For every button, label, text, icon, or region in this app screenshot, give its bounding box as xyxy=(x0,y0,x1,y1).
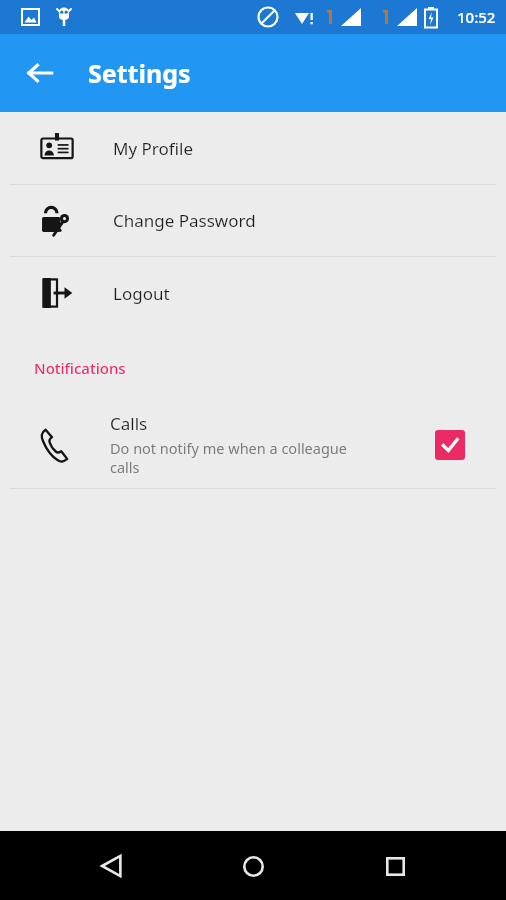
button[interactable]: Logout xyxy=(0,257,506,329)
button[interactable]: My Profile xyxy=(0,112,506,184)
staticText: Settings xyxy=(88,56,191,90)
staticText: Calls xyxy=(110,412,148,435)
staticText: Change Password xyxy=(113,209,256,232)
button[interactable]: Calls xyxy=(0,401,506,488)
staticText: My Profile xyxy=(113,137,193,160)
staticText: 10:52 xyxy=(457,7,496,27)
button[interactable]: Back xyxy=(18,51,62,95)
staticText: Notifications xyxy=(34,358,126,378)
button[interactable]: Calls notification toggle xyxy=(435,430,465,460)
staticText: Do not notify me when a colleague calls xyxy=(110,438,365,477)
button[interactable]: Change Password xyxy=(0,185,506,256)
button[interactable]: Home xyxy=(223,836,283,896)
staticText: Logout xyxy=(113,282,170,305)
button[interactable]: Back xyxy=(82,836,142,896)
button[interactable]: Recent apps xyxy=(365,836,425,896)
